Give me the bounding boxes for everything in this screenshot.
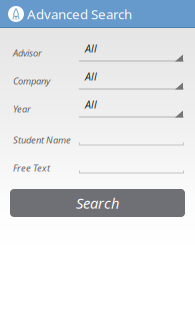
staticText: Year: [13, 103, 31, 115]
staticText: Advanced Search: [27, 5, 132, 23]
button[interactable]: All: [79, 94, 184, 117]
staticText: Free Text: [13, 162, 50, 174]
button[interactable]: All: [79, 38, 184, 61]
staticText: All: [85, 69, 97, 83]
staticText: Search: [76, 193, 119, 213]
staticText: All: [85, 97, 97, 111]
staticText: Advisor: [13, 47, 42, 59]
button[interactable]: [79, 153, 184, 176]
staticText: All: [85, 41, 97, 55]
button[interactable]: All: [79, 66, 184, 89]
button[interactable]: [79, 125, 184, 148]
staticText: Student Name: [13, 134, 71, 146]
button[interactable]: Search: [10, 189, 185, 217]
staticText: Company: [13, 75, 50, 87]
